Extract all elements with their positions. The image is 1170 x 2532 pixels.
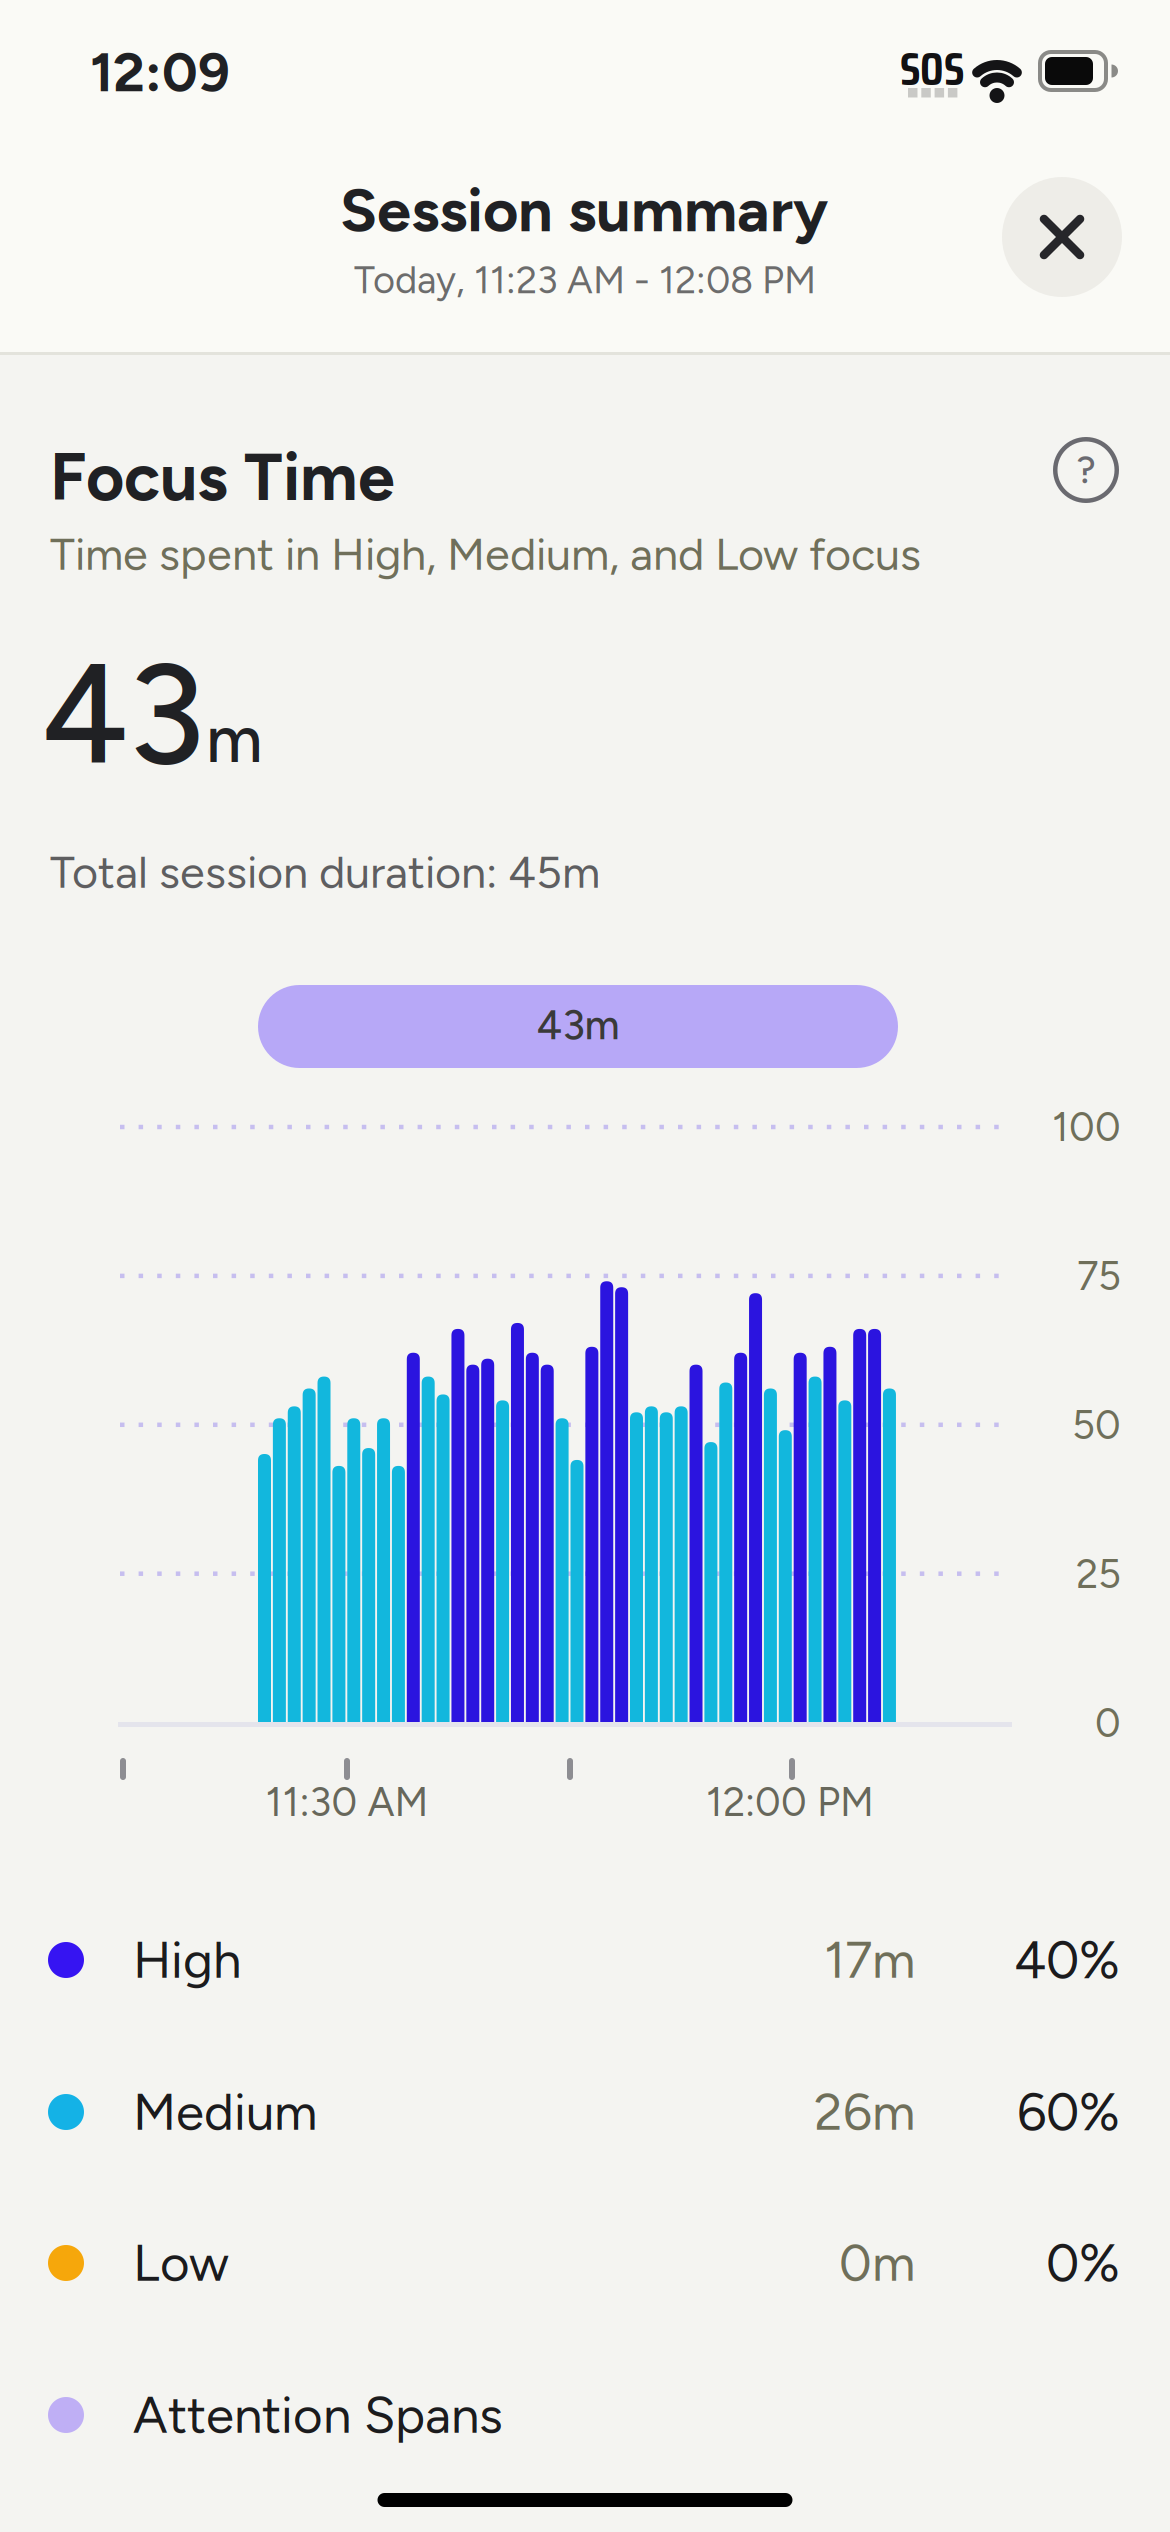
staticText: Medium — [133, 2081, 317, 2143]
staticText: Today, 11:23 AM - 12:08 PM — [354, 257, 816, 303]
staticText: 12:09 — [90, 39, 230, 105]
staticText: Focus Time — [50, 437, 395, 517]
staticText: 26m — [814, 2081, 915, 2143]
staticText: 40% — [1014, 1929, 1120, 1991]
staticText: 43 — [41, 630, 205, 798]
button[interactable]: Close — [1002, 177, 1122, 297]
staticText: 0 — [1095, 1699, 1121, 1747]
staticText: SOS — [900, 33, 964, 105]
staticText: Time spent in High, Medium, and Low focu… — [50, 527, 921, 581]
staticText: 43m — [536, 1000, 619, 1050]
staticText: Attention Spans — [133, 2384, 503, 2446]
staticText: 11:30 AM — [265, 1778, 428, 1826]
staticText: 17m — [824, 1929, 915, 1991]
staticText: Session summary — [340, 173, 828, 247]
staticText: 75 — [1077, 1252, 1121, 1300]
staticText: 0m — [839, 2232, 915, 2294]
staticText: 12:00 PM — [706, 1778, 874, 1826]
staticText: High — [133, 1929, 241, 1991]
staticText: Low — [133, 2232, 229, 2294]
staticText: m — [206, 699, 263, 779]
staticText: 100 — [1052, 1103, 1121, 1151]
staticText: 60% — [1017, 2081, 1120, 2143]
staticText: 25 — [1076, 1550, 1121, 1598]
staticText: 50 — [1072, 1401, 1121, 1449]
staticText: ? — [1076, 447, 1095, 493]
staticText: 0% — [1046, 2232, 1120, 2294]
staticText: Total session duration: 45m — [50, 845, 600, 899]
button[interactable]: Help — [1053, 437, 1119, 503]
